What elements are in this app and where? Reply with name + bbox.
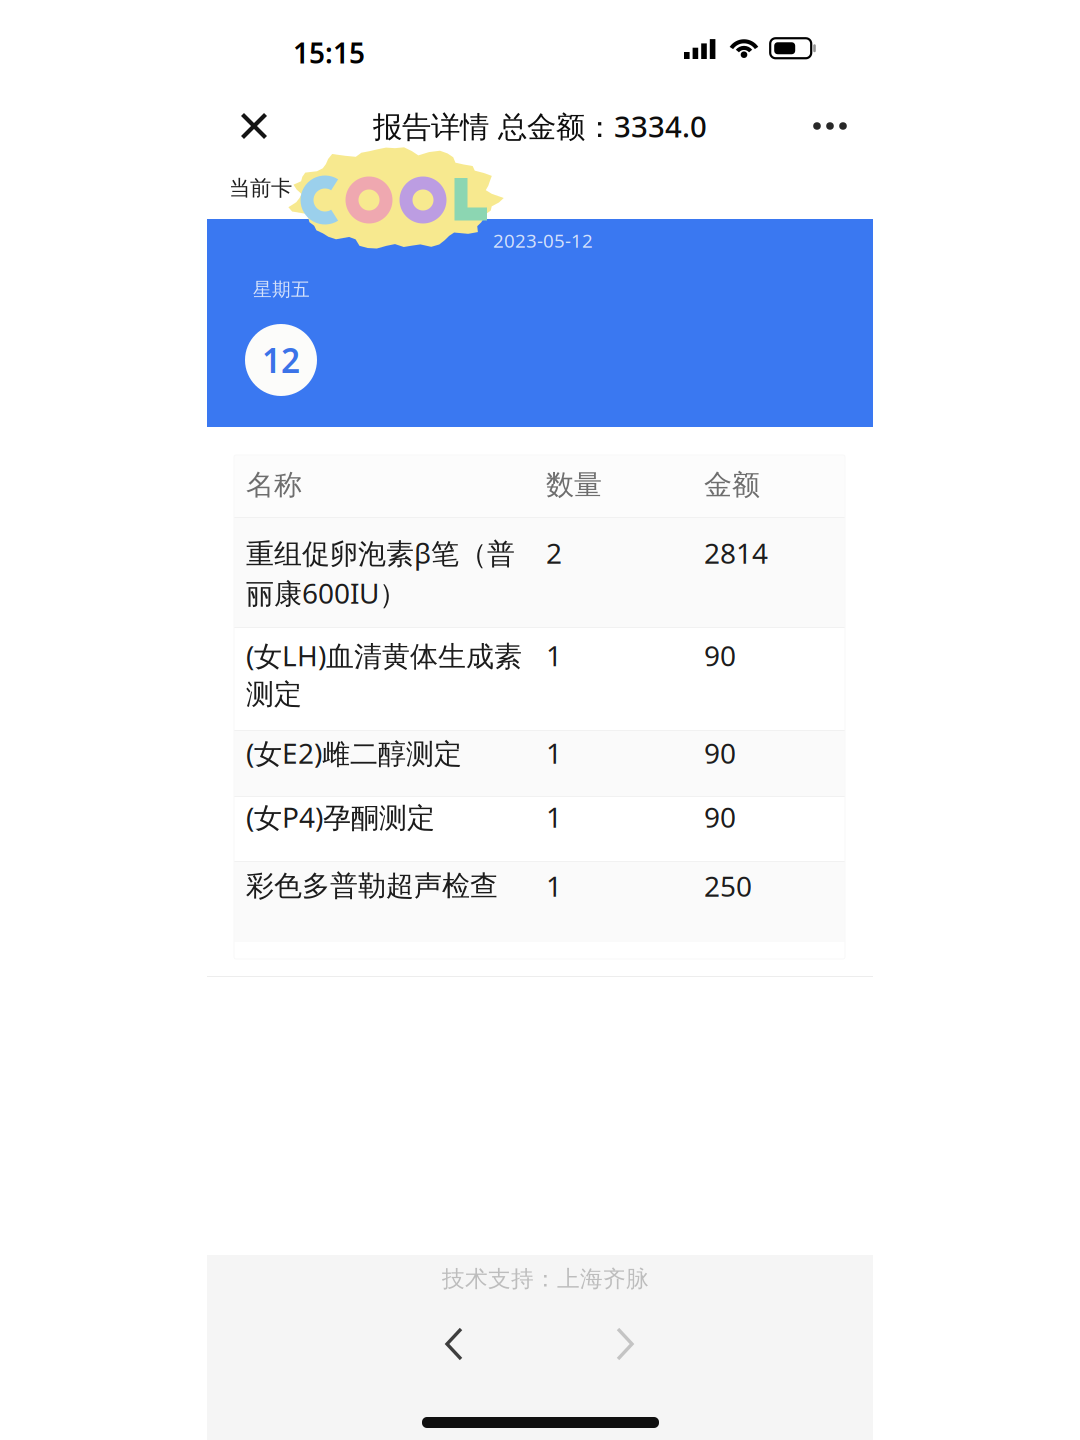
staticText: (女E2)雌二醇测定	[246, 734, 462, 772]
button[interactable]: Close	[226, 98, 282, 154]
staticText: (女P4)孕酮测定	[246, 798, 435, 836]
staticText: 数量	[546, 468, 602, 502]
staticText: 技术支持：上海齐脉	[442, 1265, 649, 1293]
staticText: 星期五	[253, 278, 310, 301]
staticText: 重组促卵泡素β笔（普	[246, 534, 515, 572]
staticText: 1	[546, 867, 562, 905]
staticText: 15:15	[293, 34, 365, 71]
staticText: 1	[546, 637, 562, 674]
staticText: 1	[546, 798, 562, 836]
staticText: 2814	[704, 534, 768, 572]
button[interactable]: More options	[804, 98, 860, 154]
staticText: 90	[704, 637, 736, 674]
staticText: 报告详情 总金额：3334.0	[373, 106, 707, 145]
staticText: 90	[704, 798, 736, 836]
staticText: 丽康600IU）	[246, 574, 407, 612]
staticText: 彩色多普勒超声检查	[246, 869, 498, 903]
staticText: 90	[704, 734, 736, 772]
button[interactable]: Back	[421, 1311, 487, 1377]
staticText: 2023-05-12	[493, 228, 593, 253]
button[interactable]: Forward	[592, 1311, 658, 1377]
staticText: 金额	[704, 468, 760, 502]
staticText: 名称	[246, 468, 302, 502]
staticText: 测定	[246, 677, 302, 712]
staticText: 2	[546, 534, 562, 572]
staticText: (女LH)血清黄体生成素	[246, 637, 522, 674]
staticText: 1	[546, 734, 562, 772]
staticText: 当前卡	[229, 175, 292, 201]
staticText: 12	[262, 338, 300, 382]
staticText: 250	[704, 867, 752, 905]
